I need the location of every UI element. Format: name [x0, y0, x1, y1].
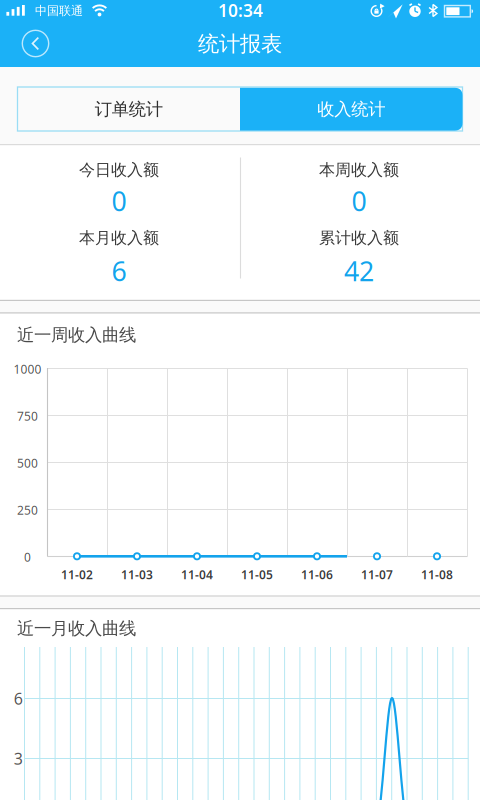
staticText: 订单统计	[95, 99, 163, 120]
staticText: 6	[14, 688, 23, 709]
button[interactable]: Back	[20, 28, 51, 59]
staticText: 11-03	[121, 566, 153, 582]
button[interactable]: 收入统计	[240, 87, 462, 131]
staticText: 本月收入额	[79, 228, 159, 248]
staticText: 统计报表	[198, 31, 282, 57]
staticText: 今日收入额	[79, 160, 159, 180]
staticText: 42	[344, 253, 374, 289]
staticText: 收入统计	[317, 99, 385, 120]
staticText: 6	[111, 253, 126, 289]
staticText: 累计收入额	[319, 228, 399, 248]
staticText: 0	[24, 549, 31, 565]
staticText: 1000	[13, 361, 41, 377]
staticText: 0	[111, 183, 126, 219]
button[interactable]: 订单统计	[17, 87, 240, 131]
staticText: 500	[17, 455, 38, 471]
staticText: 近一周收入曲线	[17, 324, 136, 346]
staticText: 0	[351, 183, 366, 219]
staticText: 本周收入额	[319, 160, 399, 180]
staticText: 11-02	[61, 566, 93, 582]
staticText: 11-05	[241, 566, 273, 582]
staticText: 3	[14, 748, 23, 769]
staticText: 近一月收入曲线	[17, 618, 136, 639]
staticText: 11-06	[301, 566, 333, 582]
staticText: 中国联通	[35, 3, 83, 18]
staticText: 250	[17, 502, 38, 518]
staticText: 11-04	[181, 566, 213, 582]
staticText: 11-07	[361, 566, 393, 582]
staticText: 750	[17, 408, 38, 424]
staticText: 10:34	[218, 0, 263, 22]
staticText: 11-08	[421, 566, 453, 582]
